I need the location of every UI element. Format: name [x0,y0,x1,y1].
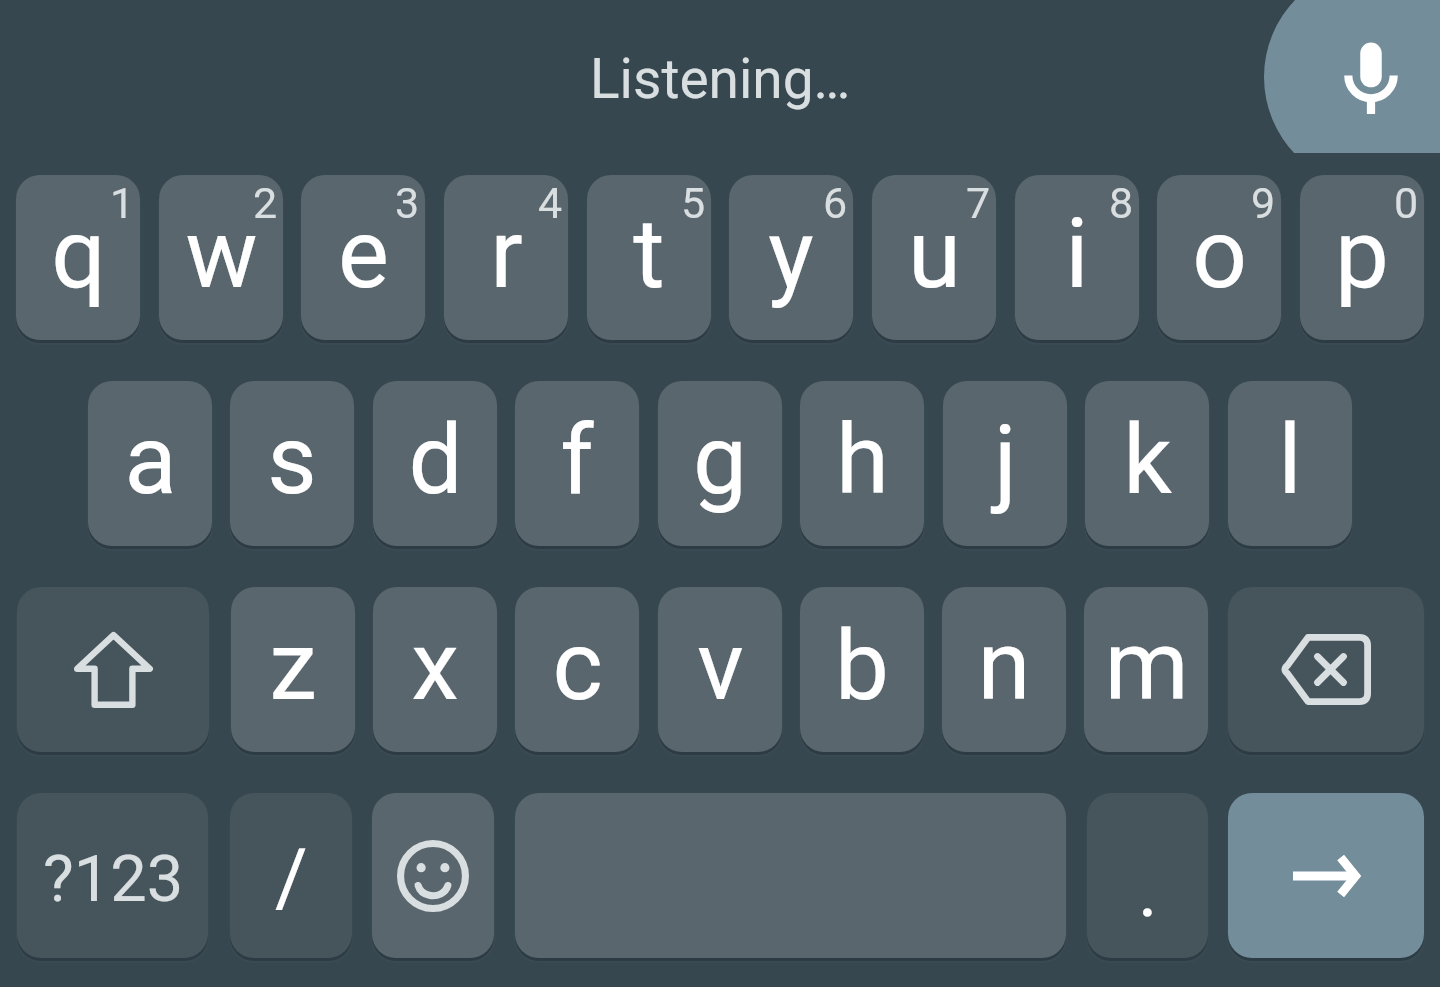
staticText: Listening… [590,47,851,111]
button[interactable]: z [231,587,355,752]
staticText: d [408,404,463,517]
staticText: 9 [1251,178,1276,228]
staticText: p [1335,198,1389,311]
button[interactable]: b [800,587,924,752]
button[interactable]: v [658,587,782,752]
button[interactable]: Shift [17,587,209,752]
button[interactable]: d [373,381,497,546]
staticText: f [560,404,594,517]
staticText: . [1138,847,1158,934]
button[interactable]: c [515,587,639,752]
button[interactable]: e [301,175,425,340]
staticText: i [1065,198,1089,311]
staticText: n [977,610,1031,723]
button[interactable]: a [88,381,212,546]
staticText: 8 [1109,178,1134,228]
button[interactable]: o [1157,175,1281,340]
staticText: 4 [538,178,563,228]
staticText: m [1104,610,1189,723]
staticText: y [768,198,814,311]
staticText: b [835,610,889,723]
staticText: x [411,610,459,723]
button[interactable]: n [942,587,1066,752]
button[interactable]: g [658,381,782,546]
button[interactable]: x [373,587,497,752]
button[interactable]: i [1015,175,1139,340]
staticText: ?123 [43,841,184,917]
staticText: h [836,404,889,517]
button[interactable]: Enter [1228,793,1424,958]
staticText: k [1123,404,1172,517]
staticText: c [552,610,603,723]
staticText: w [185,198,258,311]
staticText: 5 [681,178,706,228]
button[interactable]: ?123 [17,793,208,958]
staticText: s [267,404,317,517]
button[interactable]: Voice input [1264,0,1440,153]
staticText: 6 [823,178,848,228]
button[interactable]: Delete [1228,587,1424,752]
staticText: / [275,832,308,925]
staticText: r [490,198,523,311]
button[interactable]: y [729,175,853,340]
button[interactable]: p [1300,175,1424,340]
button[interactable]: f [515,381,639,546]
button[interactable]: h [800,381,924,546]
button[interactable]: j [943,381,1067,546]
staticText: 2 [253,178,278,228]
button[interactable]: w [159,175,283,340]
staticText: z [269,610,317,723]
button[interactable]: / [230,793,352,958]
button[interactable]: r [444,175,568,340]
staticText: j [994,404,1017,517]
button[interactable]: l [1228,381,1352,546]
staticText: g [693,404,747,517]
staticText: v [697,610,744,723]
staticText: o [1192,198,1247,311]
staticText: l [1278,404,1302,517]
staticText: 7 [966,178,991,228]
button[interactable]: . [1087,793,1208,958]
staticText: e [338,198,389,311]
staticText: 0 [1394,178,1419,228]
button[interactable]: m [1084,587,1208,752]
button[interactable]: k [1085,381,1209,546]
button[interactable]: u [872,175,996,340]
button[interactable]: q [16,175,140,340]
button[interactable]: t [587,175,711,340]
staticText: 3 [395,178,420,228]
staticText: u [908,198,961,311]
staticText: a [124,404,177,517]
button[interactable]: s [230,381,354,546]
staticText: q [51,198,106,311]
staticText: t [633,198,665,311]
staticText: 1 [110,178,135,228]
button[interactable]: Emoji [372,793,494,958]
